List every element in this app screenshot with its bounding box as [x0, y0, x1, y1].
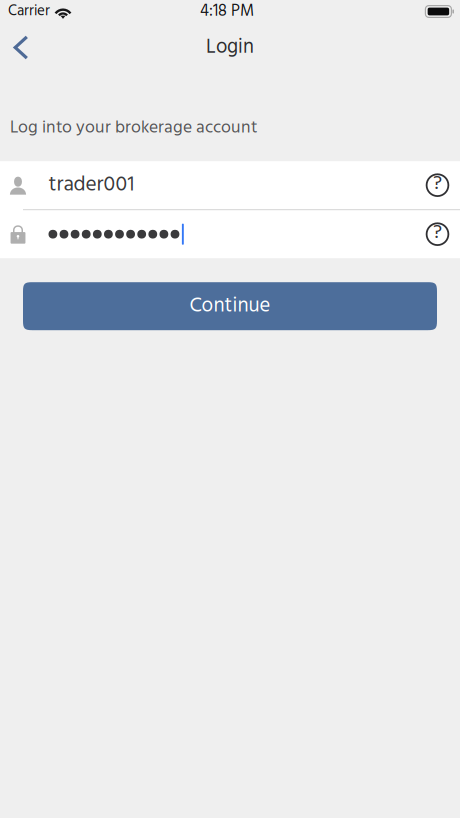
staticText: ?	[433, 168, 442, 200]
staticText: Continue	[189, 290, 270, 323]
staticText: Login	[206, 31, 254, 64]
button[interactable]: Back	[0, 23, 42, 72]
staticText: 4:18 PM	[200, 0, 254, 25]
button[interactable]: Help	[422, 219, 452, 249]
button[interactable]: Continue	[23, 282, 437, 330]
staticText: Log into your brokerage account	[10, 114, 257, 142]
staticText: trader001	[48, 168, 134, 202]
staticText: ?	[433, 217, 442, 249]
button[interactable]: Help	[422, 170, 452, 200]
staticText: Carrier	[8, 0, 50, 23]
